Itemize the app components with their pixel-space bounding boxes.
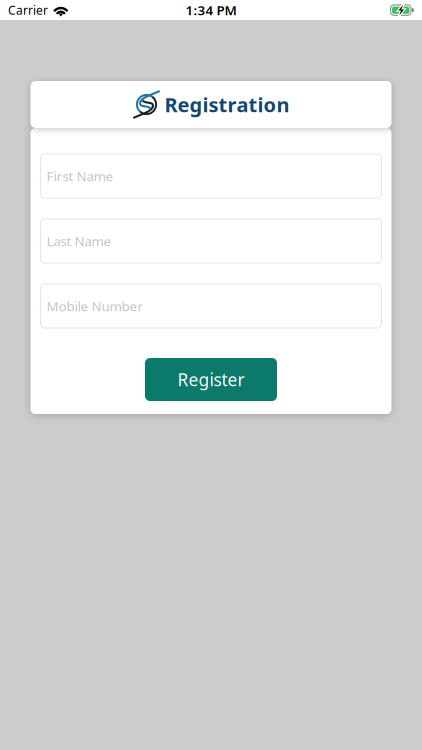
button[interactable]: First Name — [40, 154, 381, 198]
staticText: Last Name — [46, 232, 111, 250]
staticText: First Name — [46, 167, 113, 185]
staticText: Carrier — [8, 2, 48, 18]
staticText: Registration — [164, 91, 289, 118]
button[interactable]: Last Name — [40, 219, 381, 263]
staticText: Register — [177, 368, 244, 391]
button[interactable]: Register — [145, 358, 277, 401]
button[interactable]: Mobile Number — [40, 284, 381, 328]
staticText: Mobile Number — [46, 297, 143, 315]
staticText: 1:34 PM — [185, 1, 236, 19]
